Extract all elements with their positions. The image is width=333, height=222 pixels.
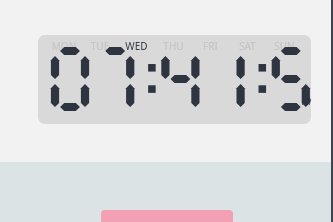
button[interactable]: Primary action: [101, 210, 233, 222]
staticText: FRI: [192, 39, 229, 53]
button[interactable]: MON: [38, 35, 311, 124]
staticText: WED: [118, 39, 155, 53]
staticText: AM: [302, 95, 311, 107]
staticText: THU: [155, 39, 192, 53]
staticText: TUE: [82, 39, 118, 53]
staticText: MON: [46, 39, 82, 53]
staticText: SAT: [229, 39, 266, 53]
staticText: SUN: [266, 39, 303, 53]
